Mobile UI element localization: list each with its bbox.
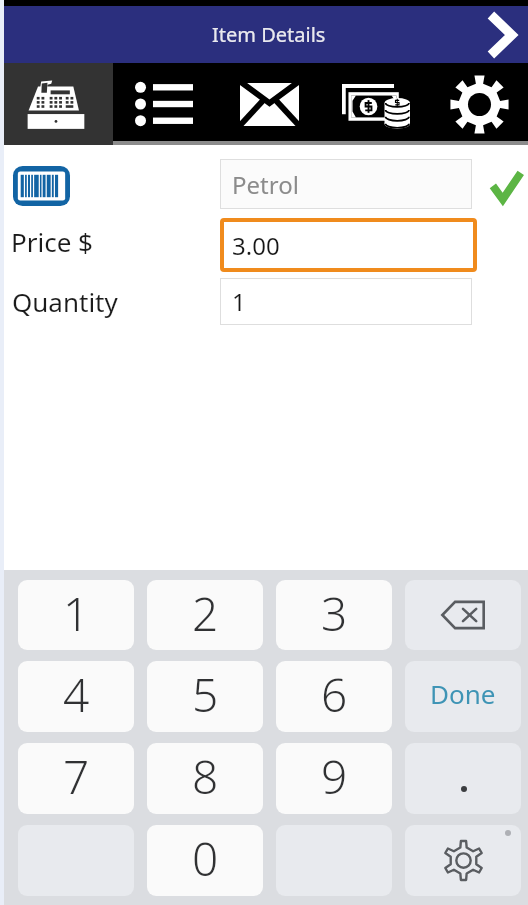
button[interactable]: 1 bbox=[220, 278, 472, 325]
button[interactable]: Backspace bbox=[405, 580, 521, 650]
staticText: Quantity bbox=[12, 284, 118, 319]
button[interactable]: Register bbox=[4, 63, 113, 145]
button[interactable]: Done bbox=[405, 661, 521, 732]
staticText: Done bbox=[430, 676, 496, 711]
button[interactable]: 3.00 bbox=[220, 218, 477, 272]
button[interactable]: Next bbox=[472, 6, 528, 63]
button[interactable]: Scan barcode bbox=[13, 166, 70, 206]
staticText: 1 bbox=[63, 582, 90, 645]
staticText: 7 bbox=[63, 745, 90, 808]
staticText: 3.00 bbox=[232, 229, 280, 262]
button[interactable]: Money bbox=[320, 63, 424, 141]
button[interactable]: 8 bbox=[147, 743, 263, 814]
button[interactable]: 6 bbox=[276, 661, 392, 732]
button[interactable]: 1 bbox=[18, 580, 134, 650]
staticText: Price $ bbox=[11, 224, 93, 259]
button[interactable]: List bbox=[113, 63, 216, 141]
staticText: 3 bbox=[321, 582, 348, 645]
staticText: 5 bbox=[192, 663, 219, 726]
button[interactable]: Settings bbox=[424, 63, 528, 141]
staticText: 1 bbox=[232, 285, 246, 318]
staticText: 8 bbox=[192, 745, 219, 808]
button[interactable]: 4 bbox=[18, 661, 134, 732]
button[interactable]: Mail bbox=[216, 63, 320, 141]
staticText: 2 bbox=[192, 582, 219, 645]
button[interactable]: Decimal point bbox=[405, 743, 521, 814]
staticText: 9 bbox=[321, 745, 348, 808]
staticText: 6 bbox=[321, 663, 348, 726]
staticText: Petrol bbox=[232, 168, 299, 201]
button[interactable]: Keyboard settings bbox=[405, 825, 521, 896]
staticText: 4 bbox=[63, 663, 90, 726]
button[interactable]: 0 bbox=[147, 825, 263, 896]
button[interactable]: 7 bbox=[18, 743, 134, 814]
button[interactable]: 9 bbox=[276, 743, 392, 814]
button[interactable]: 2 bbox=[147, 580, 263, 650]
staticText: 0 bbox=[192, 827, 219, 890]
button[interactable]: 5 bbox=[147, 661, 263, 732]
staticText: Item Details bbox=[212, 21, 326, 48]
button[interactable]: Petrol bbox=[220, 159, 472, 209]
button[interactable]: 3 bbox=[276, 580, 392, 650]
